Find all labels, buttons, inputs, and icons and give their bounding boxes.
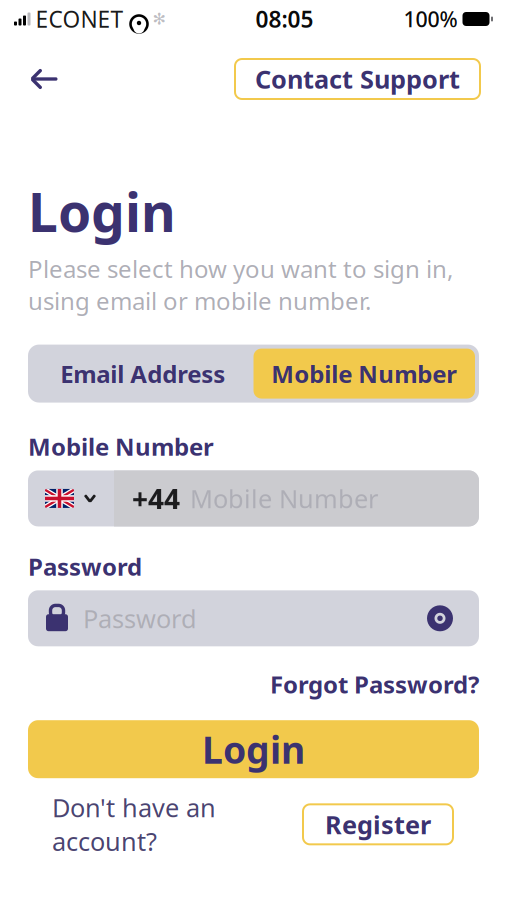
button[interactable]: Show password [411, 597, 469, 639]
staticText: Password [83, 601, 197, 635]
button[interactable]: Login [28, 720, 479, 778]
button[interactable]: Forgot Password? [270, 664, 479, 704]
staticText: 08:05 [255, 4, 313, 34]
staticText: Contact Support [255, 62, 460, 96]
staticText: Login [28, 176, 176, 247]
staticText: Mobile Number [28, 431, 214, 462]
staticText: Please select how you want to sign in, u… [28, 253, 453, 316]
staticText: ECONET [35, 4, 123, 34]
staticText: Forgot Password? [270, 668, 479, 700]
staticText: ✻ [152, 10, 165, 28]
staticText: Login [202, 724, 305, 774]
button[interactable]: Register [303, 804, 453, 844]
button[interactable]: Email Address [32, 349, 253, 399]
staticText: Mobile Number [190, 482, 378, 515]
staticText: Don't have an account? [52, 791, 216, 858]
staticText: Mobile Number [271, 358, 457, 389]
button[interactable]: Contact Support [235, 59, 480, 99]
staticText: 100% [403, 5, 457, 33]
button[interactable]: Mobile Number [253, 349, 475, 399]
staticText: Password [28, 550, 142, 582]
staticText: +44 [132, 480, 180, 517]
staticText: Register [325, 807, 431, 841]
button[interactable]: Select country code [28, 470, 114, 526]
staticText: Email Address [60, 358, 225, 389]
button[interactable]: Back [20, 58, 70, 100]
